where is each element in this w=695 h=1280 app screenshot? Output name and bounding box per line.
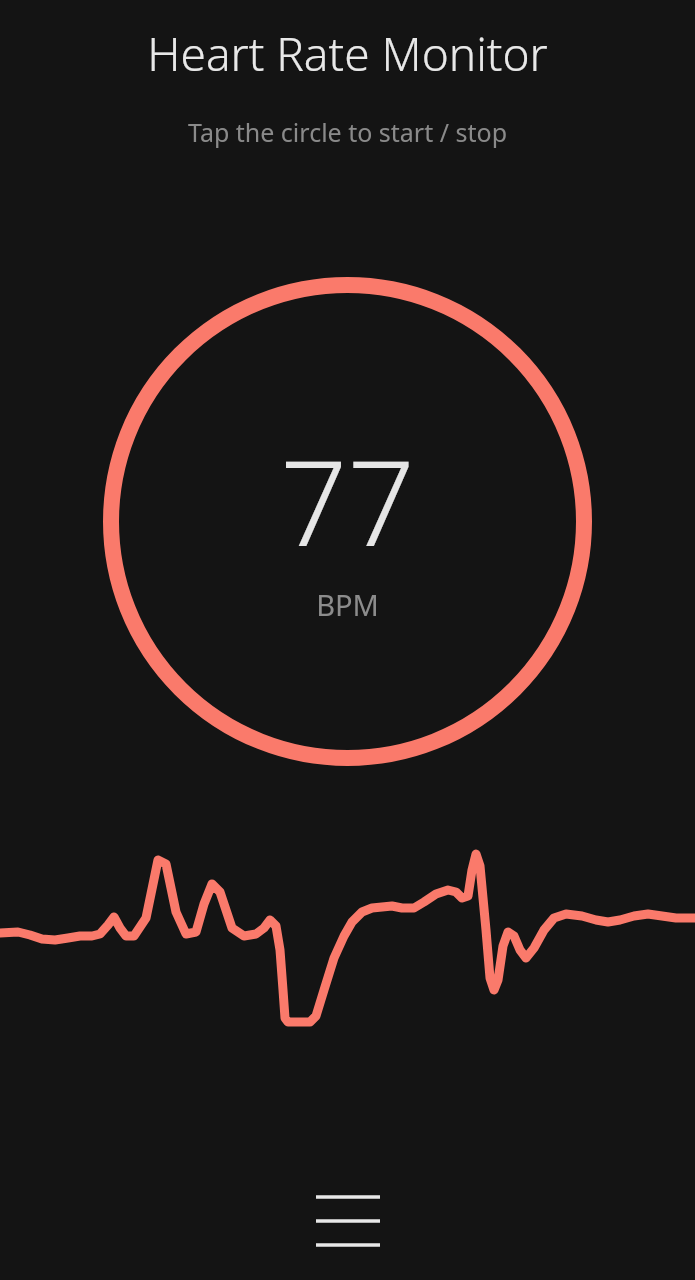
staticText: Heart Rate Monitor	[0, 22, 695, 85]
button[interactable]: 77	[103, 277, 592, 766]
staticText: BPM	[316, 585, 379, 624]
staticText: 77	[280, 420, 415, 581]
staticText: Tap the circle to start / stop	[0, 115, 695, 149]
button[interactable]: Menu	[293, 1176, 403, 1266]
